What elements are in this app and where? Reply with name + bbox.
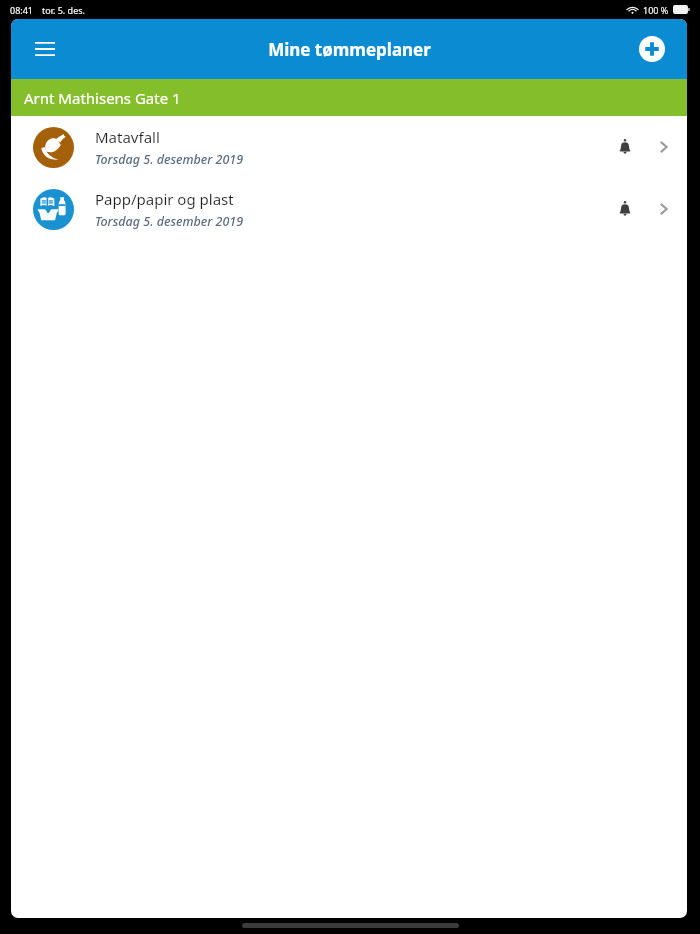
staticText: Mine tømmeplaner (268, 38, 431, 61)
button[interactable]: Notification reminder (605, 189, 645, 229)
staticText: 100 % (643, 4, 669, 16)
button[interactable]: Add (630, 27, 674, 71)
button[interactable]: Papp/papir og plast (11, 178, 687, 240)
staticText: Arnt Mathisens Gate 1 (24, 88, 181, 108)
staticText: Papp/papir og plast (95, 189, 234, 209)
button[interactable]: Matavfall (11, 116, 687, 178)
staticText: tor. 5. des. (42, 4, 85, 16)
button[interactable]: Open details (649, 194, 679, 224)
button[interactable]: Arnt Mathisens Gate 1 (11, 79, 687, 116)
button[interactable]: Notification reminder (605, 127, 645, 167)
staticText: Torsdag 5. desember 2019 (95, 213, 244, 230)
staticText: Torsdag 5. desember 2019 (95, 151, 244, 168)
button[interactable]: Menu (21, 25, 69, 73)
button[interactable]: Open details (649, 132, 679, 162)
staticText: 08:41 (10, 4, 34, 16)
staticText: Matavfall (95, 127, 160, 147)
